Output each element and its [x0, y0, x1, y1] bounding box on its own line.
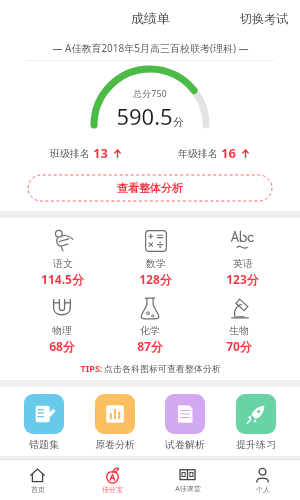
button[interactable]: 语文 [27, 224, 98, 291]
staticText: 提升练习 [236, 438, 276, 451]
button[interactable]: 切换考试 [228, 3, 300, 34]
button[interactable]: 物理 [35, 291, 89, 358]
button[interactable]: 试卷解析 [159, 394, 211, 451]
button[interactable]: 生物 [212, 291, 266, 358]
staticText: 原卷分析 [95, 438, 135, 451]
button[interactable]: 数学 [125, 224, 186, 291]
staticText: 128分 [139, 271, 172, 287]
staticText: 佳分宝 [102, 485, 123, 494]
button[interactable]: A佳课堂 [150, 460, 225, 500]
button[interactable]: 错题集 [18, 394, 70, 451]
button[interactable]: 首页 [0, 460, 75, 500]
staticText: 68分 [49, 338, 75, 354]
staticText: 114.5分 [41, 271, 84, 287]
staticText: 16 [221, 144, 236, 162]
staticText: 87分 [137, 338, 163, 354]
staticText: 语文 [53, 257, 73, 270]
button[interactable]: 查看整体分析 [28, 175, 272, 201]
staticText: 总分750 [133, 87, 167, 99]
button[interactable]: 班级排名 [44, 141, 128, 165]
staticText: TIPS: [79, 362, 104, 374]
staticText: 123分 [226, 271, 259, 287]
staticText: 切换考试 [240, 11, 288, 26]
button[interactable]: 提升练习 [230, 394, 282, 451]
button[interactable]: 英语 [212, 224, 273, 291]
staticText: 首页 [31, 485, 45, 494]
staticText: — A佳教育2018年5月高三百校联考(理科) — [52, 41, 249, 55]
staticText: 个人 [256, 485, 270, 494]
staticText: 分 [173, 115, 184, 129]
staticText: A佳课堂 [175, 484, 201, 494]
staticText: 英语 [233, 257, 253, 270]
staticText: 化学 [140, 324, 160, 337]
staticText: 590.5 [116, 101, 173, 131]
staticText: 13 [93, 144, 108, 162]
staticText: 查看整体分析 [117, 181, 183, 195]
staticText: 70分 [226, 338, 252, 354]
staticText: 成绩单 [131, 10, 170, 26]
staticText: 错题集 [29, 438, 59, 451]
button[interactable]: 原卷分析 [89, 394, 141, 451]
button[interactable]: 个人 [225, 460, 300, 500]
staticText: 年级排名 [178, 147, 218, 160]
staticText: 点击各科图标可查看整体分析 [104, 363, 221, 374]
button[interactable]: 佳分宝 [75, 460, 150, 500]
staticText: 数学 [146, 257, 166, 270]
button[interactable]: 化学 [123, 291, 177, 358]
staticText: 班级排名 [50, 147, 90, 160]
button[interactable]: 年级排名 [172, 141, 256, 165]
staticText: 生物 [229, 324, 249, 337]
staticText: 物理 [52, 324, 72, 337]
staticText: 试卷解析 [165, 438, 205, 451]
